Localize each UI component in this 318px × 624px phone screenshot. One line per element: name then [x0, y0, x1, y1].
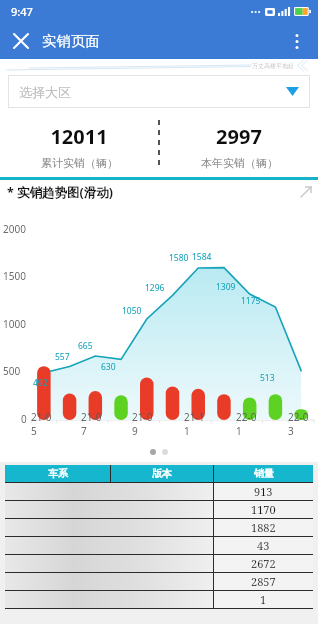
button[interactable]: 1 [5, 591, 313, 608]
staticText: 665 [78, 340, 93, 352]
button[interactable]: More options [281, 25, 313, 57]
staticText: 1580 [169, 252, 189, 264]
staticText: * 实销趋势图(滑动) [7, 184, 114, 201]
button[interactable]: 车系 [5, 465, 110, 482]
staticText: 913 [254, 484, 273, 499]
staticText: 1170 [251, 502, 276, 517]
button[interactable]: Close [5, 25, 37, 57]
staticText: 1296 [145, 282, 165, 294]
staticText: 版本 [152, 467, 172, 480]
staticText: 实销页面 [42, 32, 100, 50]
staticText: 销量 [254, 467, 274, 480]
button[interactable]: 销量 [214, 465, 313, 482]
staticText: 21-07 [81, 410, 106, 438]
button[interactable]: 2857 [5, 573, 313, 590]
staticText: 1 [260, 592, 267, 607]
button[interactable]: 43 [5, 537, 313, 554]
staticText: 车系 [48, 467, 68, 480]
staticText: 累计实销（辆） [41, 156, 118, 170]
staticText: 21-11 [184, 410, 210, 438]
staticText: 万丈高楼平地起 [252, 62, 294, 70]
staticText: 500 [3, 364, 21, 378]
button[interactable]: 2997 [160, 112, 318, 180]
staticText: 9:47 [11, 4, 33, 19]
other: Expand chart [301, 187, 311, 197]
staticText: 2000 [3, 222, 26, 236]
staticText: 1000 [3, 317, 26, 331]
staticText: 2997 [216, 123, 262, 150]
staticText: 1309 [216, 281, 236, 293]
staticText: 2672 [251, 556, 276, 571]
button[interactable]: 选择大区 [8, 75, 310, 108]
staticText: 2857 [251, 574, 276, 589]
button[interactable]: 12011 [0, 112, 158, 180]
staticText: 1175 [241, 295, 261, 307]
staticText: 630 [101, 361, 116, 373]
other: Dropdown [286, 87, 299, 96]
staticText: 选择大区 [19, 84, 286, 100]
staticText: 22-01 [236, 410, 262, 438]
staticText: 12011 [50, 123, 108, 150]
staticText: 21-09 [132, 410, 158, 438]
staticText: 557 [55, 351, 70, 363]
staticText: 21-05 [31, 410, 56, 438]
staticText: 1882 [251, 520, 276, 535]
staticText: 492 [33, 377, 48, 389]
staticText: 513 [260, 372, 275, 384]
staticText: 1050 [122, 305, 142, 317]
staticText: 1500 [3, 269, 26, 283]
button[interactable]: 版本 [111, 465, 213, 482]
button[interactable]: 1170 [5, 501, 313, 518]
staticText: 22-03 [288, 410, 314, 438]
button[interactable]: 2672 [5, 555, 313, 572]
button[interactable]: * 实销趋势图(滑动) [0, 180, 318, 204]
staticText: 本年实销（辆） [201, 156, 278, 170]
staticText: 43 [257, 538, 270, 553]
staticText: 0 [21, 412, 27, 426]
button[interactable]: 913 [5, 483, 313, 500]
button[interactable]: 1882 [5, 519, 313, 536]
staticText: 1584 [192, 251, 212, 263]
